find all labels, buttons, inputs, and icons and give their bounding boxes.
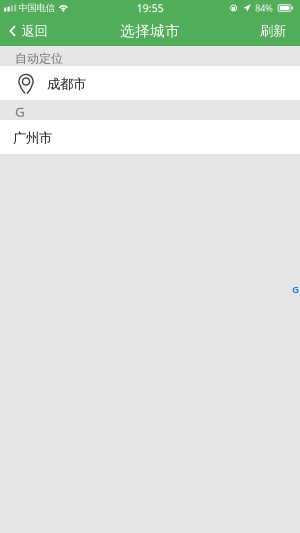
staticText: 广州市	[13, 130, 52, 146]
staticText: G	[292, 283, 299, 296]
staticText: 成都市	[47, 76, 86, 92]
button[interactable]: Jump to section G	[291, 283, 300, 296]
staticText: G	[15, 103, 25, 120]
staticText: 19:55	[136, 1, 163, 15]
button[interactable]: 返回	[0, 18, 55, 44]
staticText: 返回	[21, 23, 47, 39]
staticText: 84%	[255, 2, 273, 14]
staticText: 自动定位	[15, 51, 63, 66]
button[interactable]: 成都市	[0, 66, 300, 100]
button[interactable]: 广州市	[0, 120, 300, 154]
staticText: 中国电信	[18, 2, 54, 14]
staticText: 刷新	[260, 23, 286, 39]
button[interactable]: 刷新	[252, 18, 300, 44]
staticText: 选择城市	[120, 22, 180, 40]
